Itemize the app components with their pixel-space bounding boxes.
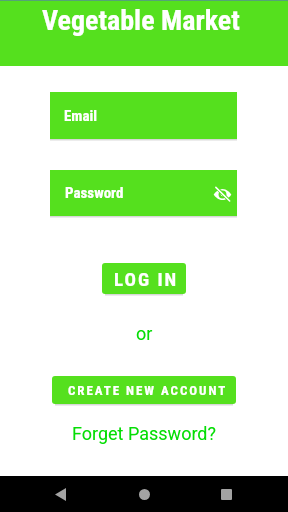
button[interactable]: Forget Password?: [72, 423, 216, 444]
staticText: Password: [65, 184, 124, 202]
staticText: Vegetable Market: [42, 4, 240, 37]
button[interactable]: LOG IN: [102, 263, 186, 294]
button[interactable]: Show password: [209, 181, 235, 207]
staticText: LOG IN: [114, 268, 179, 290]
button[interactable]: CREATE NEW ACCOUNT: [52, 376, 236, 404]
button[interactable]: Back: [42, 476, 78, 512]
staticText: or: [136, 323, 153, 344]
button[interactable]: Recent apps: [208, 476, 244, 512]
button[interactable]: Home: [126, 476, 162, 512]
button[interactable]: Email: [50, 92, 237, 139]
button[interactable]: Password: [50, 170, 237, 216]
staticText: Email: [64, 107, 98, 125]
staticText: CREATE NEW ACCOUNT: [68, 383, 228, 398]
